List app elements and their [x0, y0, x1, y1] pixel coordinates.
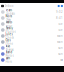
button[interactable]: Team	[0, 9, 64, 15]
button[interactable]: Compose	[61, 5, 63, 7]
staticText: Thanks	[6, 48, 14, 51]
staticText: Team	[6, 8, 12, 12]
staticText: Family	[6, 26, 13, 30]
button[interactable]: Stand	[0, 51, 64, 57]
button[interactable]: Nora	[0, 15, 64, 21]
staticText: Ava	[6, 44, 10, 48]
button[interactable]: Ops	[0, 39, 64, 45]
staticText: Tue	[58, 28, 63, 32]
staticText: Update	[6, 12, 16, 15]
button[interactable]: Jules	[0, 33, 64, 39]
staticText: Okay	[6, 18, 11, 21]
staticText: 8:41	[56, 16, 63, 20]
staticText: Done	[6, 42, 14, 45]
staticText: Photos	[6, 30, 16, 33]
staticText: 9:02	[56, 10, 63, 14]
staticText: Check	[6, 36, 14, 39]
staticText: Sat	[60, 58, 63, 62]
staticText: Tue	[58, 22, 63, 26]
staticText: Ops	[6, 38, 11, 42]
button[interactable]: Family	[0, 27, 64, 33]
staticText: Notes	[6, 54, 14, 57]
staticText: Soon	[6, 24, 13, 27]
staticText: Sun	[58, 46, 63, 50]
staticText: Here	[6, 60, 13, 63]
staticText: Marco	[6, 20, 13, 24]
staticText: Stand	[6, 50, 13, 54]
button[interactable]: Filter	[58, 5, 60, 7]
button[interactable]: Account	[1, 5, 4, 7]
staticText: Sam	[6, 56, 10, 60]
staticText: Jules	[6, 32, 13, 36]
button[interactable]: Sam	[0, 57, 64, 63]
button[interactable]: Ava	[0, 45, 64, 51]
button[interactable]: Marco	[0, 21, 64, 27]
staticText: Sun	[58, 52, 63, 56]
staticText: Inbox	[5, 4, 13, 8]
staticText: Mon	[57, 34, 63, 38]
staticText: Mon	[57, 40, 63, 44]
staticText: Nora	[6, 14, 12, 18]
